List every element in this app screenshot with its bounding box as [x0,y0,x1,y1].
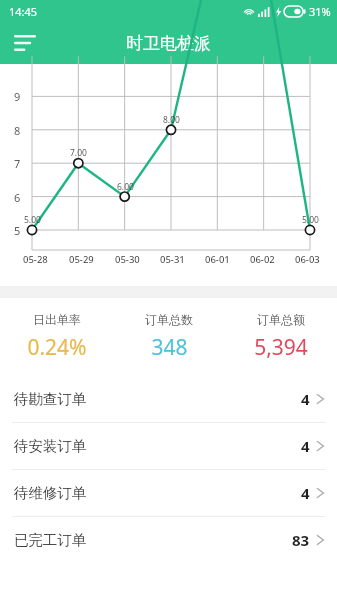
staticText: 已完工订单 [14,531,87,549]
staticText: 8.00 [163,114,180,126]
button[interactable]: 待勘查订单 [0,376,337,422]
staticText: 5.00 [24,214,41,226]
staticText: 订单总额 [257,312,305,327]
staticText: 待安装订单 [14,437,87,455]
button[interactable]: 已完工订单 [0,517,337,563]
staticText: 06-02 [250,253,275,266]
staticText: 5.00 [302,214,319,226]
staticText: 348 [151,333,188,362]
staticText: 8 [14,123,21,138]
staticText: 日出单率 [33,312,81,327]
staticText: 83 [292,530,310,550]
button[interactable]: 订单总数 [113,298,225,376]
staticText: 5,394 [254,333,308,362]
staticText: 时卫电桩派 [126,33,211,54]
button[interactable]: 订单总额 [225,298,337,376]
staticText: 0.24% [27,333,87,362]
staticText: 4 [301,389,310,409]
staticText: 4 [301,436,310,456]
staticText: 7.00 [70,147,87,159]
staticText: 05-29 [69,253,94,266]
staticText: 4 [301,483,310,503]
staticText: 9 [14,89,21,104]
button[interactable]: 待维修订单 [0,470,337,516]
staticText: 06-03 [295,253,320,266]
staticText: 31% [309,4,331,19]
button[interactable]: 日出单率 [0,298,113,376]
button[interactable]: Menu [8,26,42,60]
staticText: 05-28 [23,253,48,266]
staticText: 待勘查订单 [14,390,87,408]
staticText: 7 [14,156,21,171]
staticText: 待维修订单 [14,484,87,502]
staticText: 6.00 [117,181,134,193]
staticText: 14:45 [9,4,38,19]
staticText: 05-31 [160,253,185,266]
button[interactable]: 待安装订单 [0,423,337,469]
staticText: 05-30 [115,253,140,266]
staticText: 5 [14,223,21,238]
staticText: 6 [14,190,21,205]
staticText: 订单总数 [145,312,193,327]
staticText: 06-01 [205,253,230,266]
